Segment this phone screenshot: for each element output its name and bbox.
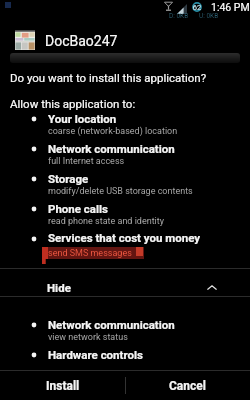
staticText: 62 (192, 3, 202, 12)
button[interactable]: Hide (0, 269, 250, 297)
staticText: read phone state and identity (48, 216, 165, 227)
staticText: send SMS messages (48, 248, 132, 259)
staticText: Services that cost you money (48, 231, 201, 244)
staticText: Do you want to install this application? (10, 71, 207, 84)
staticText: view network status (48, 332, 128, 343)
other: Collapse section (207, 285, 217, 290)
staticText: D: 0KB (169, 12, 189, 20)
staticText: Phone calls (48, 202, 108, 215)
staticText: coarse (network-based) location (48, 126, 178, 137)
staticText: DocBao247 (45, 33, 118, 49)
staticText: Storage (48, 172, 89, 185)
button[interactable]: Install (0, 371, 125, 400)
staticText: full Internet access (48, 156, 125, 167)
staticText: U: 0KB (199, 12, 219, 20)
staticText: Network communication (48, 142, 175, 155)
staticText: Your location (48, 112, 117, 125)
staticText: Hardware controls (48, 348, 143, 361)
staticText: Hide (47, 281, 71, 294)
staticText: Network communication (48, 318, 175, 331)
staticText: Allow this application to: (10, 97, 136, 110)
staticText: modify/delete USB storage contents (48, 186, 193, 197)
button[interactable]: Cancel (125, 371, 250, 400)
staticText: Cancel (169, 379, 206, 393)
staticText: Install (46, 379, 80, 393)
staticText: 1:46 PM (211, 1, 250, 13)
